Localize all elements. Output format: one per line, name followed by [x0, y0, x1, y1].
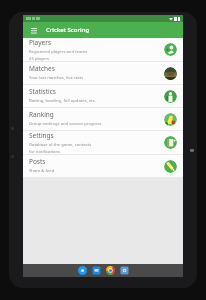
staticText: Batting, bowling, full updates, etc. — [29, 98, 96, 104]
staticText: Posts — [29, 157, 46, 166]
button[interactable]: Messages — [92, 266, 101, 275]
staticText: Matches — [29, 64, 55, 73]
staticText: Settings — [29, 131, 54, 140]
staticText: Ranking — [29, 110, 54, 119]
staticText: Group rankings and season progress — [29, 121, 102, 127]
staticText: Share & feed — [29, 168, 55, 174]
button[interactable]: Settings icon — [164, 136, 177, 149]
button[interactable]: Statistics icon — [164, 90, 177, 103]
button[interactable]: Matches icon — [164, 67, 177, 80]
button[interactable]: Camera — [120, 266, 129, 275]
button[interactable]: Posts icon — [164, 160, 177, 173]
staticText: 25 players — [29, 56, 50, 61]
staticText: for notifications — [29, 149, 61, 154]
button[interactable]: Phone — [78, 266, 87, 275]
button[interactable]: Statistics — [23, 85, 183, 107]
button[interactable]: Chrome — [106, 266, 115, 275]
staticText: Statistics — [29, 87, 56, 96]
button[interactable]: Open navigation drawer — [28, 25, 39, 36]
button[interactable]: Players icon — [164, 43, 177, 56]
staticText: Your last matches, live stats — [29, 75, 84, 81]
staticText: Registered players and teams — [29, 49, 88, 55]
button[interactable]: Matches — [23, 62, 183, 84]
button[interactable]: Settings — [23, 131, 183, 154]
button[interactable]: Ranking — [23, 108, 183, 130]
button[interactable]: Players — [23, 38, 183, 61]
staticText: Database of the game, contacts — [29, 142, 92, 148]
button[interactable]: Posts — [23, 155, 183, 177]
staticText: Cricket Scoring — [46, 26, 90, 34]
button[interactable]: Ranking icon — [164, 113, 177, 126]
staticText: Players — [29, 38, 52, 47]
